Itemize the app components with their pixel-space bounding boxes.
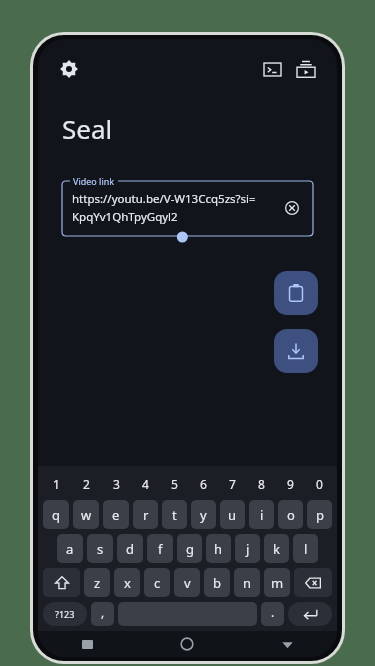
button[interactable]: n [234,568,260,597]
button[interactable]: q [43,500,69,529]
button[interactable]: u [220,500,245,529]
staticText: n [243,574,252,592]
button[interactable]: d [117,534,143,563]
staticText: , [101,604,105,620]
button[interactable]: 5 [160,471,189,497]
staticText: 5 [171,476,178,492]
button[interactable]: x [114,568,140,597]
button[interactable]: Recents [82,640,93,649]
staticText: Video link [73,175,115,187]
button[interactable]: v [174,568,200,597]
button[interactable]: i [249,500,274,529]
button[interactable]: c [144,568,170,597]
button[interactable]: , [91,602,114,626]
button[interactable]: 9 [276,471,305,497]
staticText: 0 [316,476,323,492]
button[interactable]: g [177,534,202,563]
button[interactable]: . [261,602,284,626]
staticText: KpqYv1QhTpyGqyl2 [72,209,178,225]
button[interactable]: Home [180,637,194,651]
button[interactable]: z [84,568,110,597]
staticText: s [97,540,104,558]
button[interactable]: Command [255,52,289,86]
button[interactable]: Downloads [289,52,323,86]
button[interactable]: Backspace [294,568,332,597]
staticText: 1 [53,476,60,492]
staticText: 7 [229,476,236,492]
button[interactable]: Paste [274,271,318,315]
button[interactable]: ?123 [43,602,87,626]
staticText: a [66,540,74,558]
button[interactable]: Clear [279,195,305,221]
button[interactable]: h [206,534,231,563]
staticText: c [154,574,161,592]
staticText: o [287,506,295,524]
staticText: https://youtu.be/V-W13Ccq5zs?si= [72,191,256,207]
staticText: i [260,506,264,524]
button[interactable]: e [103,500,129,529]
staticText: g [186,540,194,558]
button[interactable]: r [133,500,158,529]
button[interactable]: a [57,534,83,563]
staticText: 6 [200,476,207,492]
staticText: q [52,506,60,524]
staticText: 4 [142,476,149,492]
staticText: 2 [83,476,90,492]
staticText: p [316,506,324,524]
staticText: y [200,506,207,524]
button[interactable]: 1 [41,471,71,497]
staticText: b [213,574,221,592]
staticText: ?123 [55,608,75,620]
staticText: d [126,540,134,558]
button[interactable]: m [264,568,290,597]
staticText: t [172,506,177,524]
button[interactable]: Settings [52,52,86,86]
button[interactable]: b [204,568,230,597]
staticText: 9 [287,476,294,492]
staticText: 8 [258,476,265,492]
button[interactable]: 2 [71,471,101,497]
staticText: 3 [113,476,120,492]
staticText: v [184,574,191,592]
button[interactable]: p [307,500,332,529]
button[interactable]: w [73,500,99,529]
staticText: l [304,540,308,558]
button[interactable]: f [147,534,173,563]
staticText: Seal [62,111,113,146]
staticText: m [271,574,284,592]
button[interactable]: k [264,534,289,563]
button[interactable]: 7 [218,471,247,497]
button[interactable]: Enter [288,602,332,626]
button[interactable]: Download [274,329,318,373]
staticText: u [228,506,237,524]
button[interactable]: 6 [189,471,218,497]
button[interactable]: o [278,500,303,529]
button[interactable]: y [191,500,216,529]
staticText: w [81,506,92,524]
staticText: j [246,540,250,558]
staticText: z [94,574,101,592]
staticText: . [271,604,275,620]
staticText: h [214,540,223,558]
button[interactable]: l [293,534,318,563]
button[interactable]: j [235,534,260,563]
staticText: e [112,506,120,524]
button[interactable]: Shift [43,568,80,597]
button[interactable]: 8 [247,471,276,497]
button[interactable]: 0 [305,471,334,497]
staticText: f [158,540,163,558]
staticText: k [273,540,280,558]
staticText: x [124,574,131,592]
button[interactable]: Back [281,638,294,651]
staticText: r [143,506,149,524]
button[interactable]: 4 [131,471,160,497]
button[interactable]: 3 [101,471,131,497]
button[interactable]: s [87,534,113,563]
button[interactable]: t [162,500,187,529]
